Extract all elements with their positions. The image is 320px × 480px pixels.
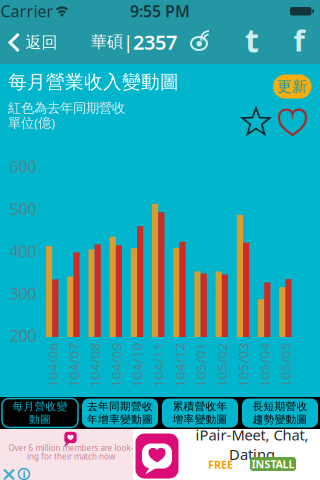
staticText: 105/04 <box>242 356 287 374</box>
button[interactable]: 累積營收年 <box>160 397 240 429</box>
staticText: 每月營收變 <box>12 400 67 413</box>
staticText: 去年同期營收 <box>87 400 153 413</box>
staticText: 104/11 <box>136 356 181 374</box>
staticText: 400 <box>9 240 36 262</box>
staticText: 200 <box>9 325 36 346</box>
staticText: 105/02 <box>200 356 245 374</box>
staticText: 500 <box>9 198 36 219</box>
staticText: 105/05 <box>263 356 308 374</box>
button[interactable]: f <box>293 20 304 59</box>
staticText: 600 <box>9 156 36 177</box>
staticText: Dating <box>229 444 275 464</box>
button[interactable]: 更 <box>273 74 312 98</box>
staticText: FREE <box>208 457 233 472</box>
button[interactable] <box>241 106 271 137</box>
staticText: i <box>22 467 25 480</box>
button[interactable]: 返回 <box>8 33 57 52</box>
staticText: t <box>245 19 259 61</box>
staticText: 每月營業收入變動圖 <box>8 70 179 93</box>
button[interactable] <box>3 468 15 480</box>
staticText: ing for their match now <box>27 451 115 462</box>
staticText: 104/08 <box>72 356 117 374</box>
button[interactable]: 每月營收變 <box>0 397 80 429</box>
staticText: 104/12 <box>157 356 202 374</box>
button[interactable]: 長短期營收 <box>240 397 320 429</box>
staticText: 新 <box>292 77 307 95</box>
staticText: 104/10 <box>115 356 160 374</box>
staticText: 趨勢變動圖 <box>252 413 307 426</box>
staticText: 104/06 <box>30 356 75 374</box>
staticText: INSTALL <box>251 457 294 471</box>
staticText: 2357 <box>133 29 177 55</box>
staticText: 單位(億) <box>8 114 55 131</box>
button[interactable] <box>135 433 178 478</box>
staticText: 累積營收年 <box>172 400 227 413</box>
staticText: f <box>293 20 304 59</box>
staticText: 返回 <box>25 33 57 52</box>
button[interactable]: t <box>245 19 259 61</box>
staticText: Over 6 million members are look- <box>8 443 133 453</box>
button[interactable]: iPair-Meet, Chat, <box>195 425 308 464</box>
staticText: | <box>123 30 133 54</box>
staticText: 紅色為去年同期營收 <box>8 100 125 116</box>
staticText: 300 <box>9 283 36 304</box>
staticText: 104/07 <box>51 356 96 374</box>
staticText: 104/09 <box>94 356 139 374</box>
staticText: 動圖 <box>29 413 51 426</box>
staticText: 華碩 <box>91 32 123 52</box>
staticText: 長短期營收 <box>252 400 307 413</box>
staticText: Carrier <box>0 0 53 22</box>
staticText: 105/01 <box>178 356 223 374</box>
staticText: 9:55 PM <box>130 0 190 22</box>
button[interactable] <box>189 28 217 52</box>
staticText: 增率變動圖 <box>172 413 227 426</box>
staticText: 105/03 <box>221 356 266 374</box>
button[interactable]: INSTALL <box>250 457 296 471</box>
button[interactable]: 去年同期營收 <box>80 397 160 429</box>
staticText: iPair-Meet, Chat, <box>195 425 308 444</box>
staticText: 年增率變動圖 <box>87 413 153 426</box>
button[interactable]: i <box>18 467 29 480</box>
staticText: 更 <box>277 77 292 95</box>
button[interactable] <box>278 107 306 136</box>
